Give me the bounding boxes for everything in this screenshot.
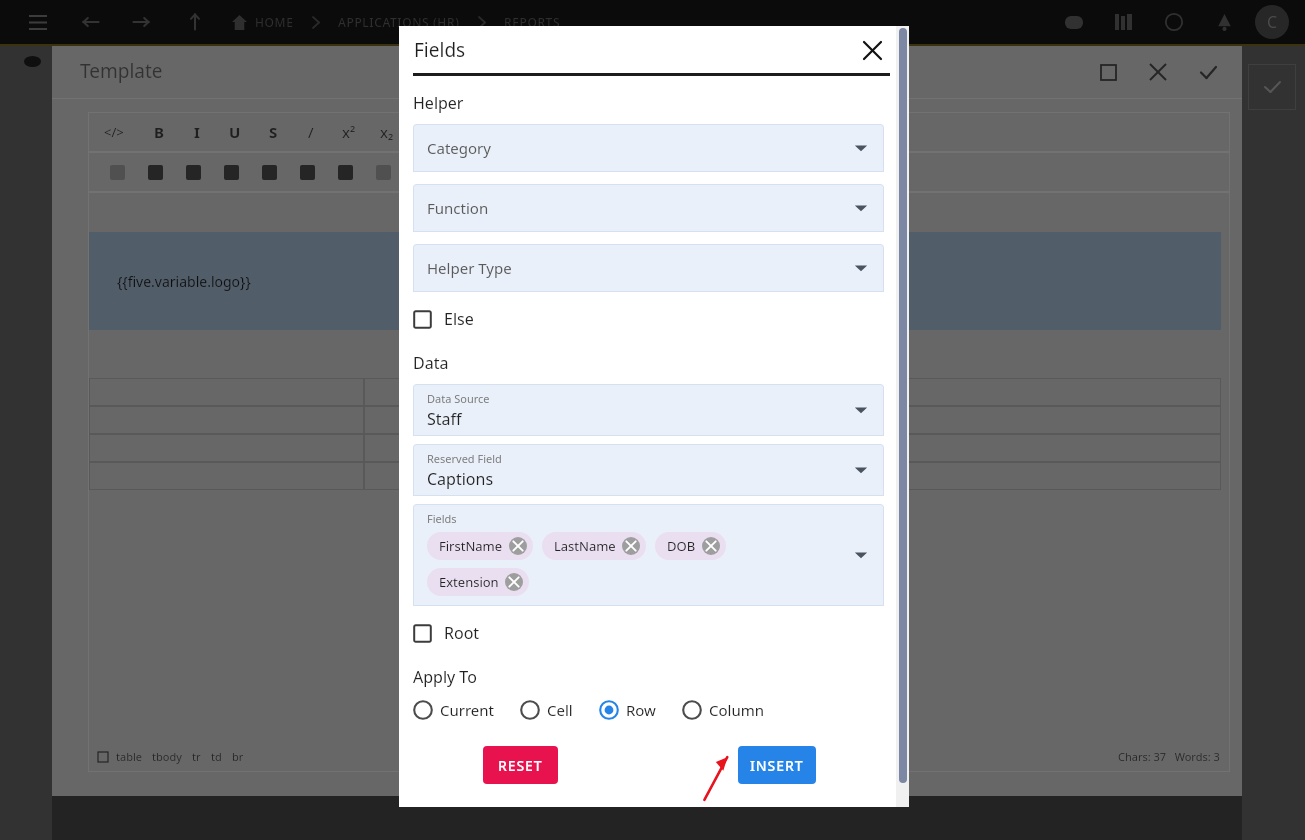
button[interactable]: Confirm — [1196, 60, 1220, 84]
staticText: Template — [80, 58, 163, 84]
button[interactable]: INSERT — [738, 746, 816, 784]
button[interactable]: Remove — [702, 537, 720, 555]
button[interactable]: Fullscreen — [1096, 60, 1120, 84]
staticText: </> — [104, 123, 124, 141]
staticText: DOB — [667, 537, 696, 555]
staticText: Cell — [547, 700, 573, 720]
button[interactable]: Remove — [509, 537, 527, 555]
staticText: tr — [192, 749, 201, 764]
staticText: Row — [626, 700, 656, 720]
button[interactable]: Close — [857, 35, 887, 65]
button[interactable]: Current — [413, 700, 498, 720]
staticText: Current — [440, 700, 494, 720]
staticText: RESET — [498, 756, 543, 775]
staticText: Staff — [427, 408, 462, 430]
staticText: Fields — [427, 511, 457, 526]
staticText: Data Source — [427, 391, 490, 406]
button[interactable]: Forward — [128, 9, 154, 35]
button[interactable]: Reserved Field — [413, 444, 884, 496]
staticText: U — [229, 122, 241, 142]
button[interactable]: FirstName — [427, 532, 533, 560]
button[interactable]: Help — [1161, 9, 1187, 35]
staticText: Data — [413, 352, 449, 374]
staticText: Staff — [603, 263, 667, 300]
staticText: Extension — [439, 573, 499, 591]
button[interactable]: Remove — [505, 573, 523, 591]
button[interactable]: Notifications — [1211, 9, 1237, 35]
staticText: table — [116, 749, 142, 764]
staticText: Chars: 37 Words: 3 — [1118, 749, 1220, 764]
staticText: Captions — [427, 468, 494, 490]
button[interactable]: APPLICATIONS (HR) — [338, 14, 460, 30]
staticText: td — [211, 749, 222, 764]
button[interactable]: Root — [413, 622, 480, 644]
staticText: Category — [427, 138, 491, 158]
staticText: Helper — [413, 92, 464, 114]
button[interactable]: Library — [1111, 9, 1137, 35]
button[interactable]: Fields — [413, 504, 884, 606]
button[interactable]: Extension — [427, 568, 529, 596]
button[interactable]: Row — [599, 700, 660, 720]
button[interactable]: Account — [1255, 5, 1289, 39]
staticText: Helper Type — [427, 258, 512, 278]
staticText: {{five.variable.logo}} — [117, 272, 251, 291]
staticText: Column — [709, 700, 764, 720]
staticText: FirstName — [439, 537, 503, 555]
button[interactable]: Menu — [24, 8, 52, 36]
staticText: Else — [444, 308, 474, 330]
staticText: / — [308, 122, 314, 142]
staticText: x² — [342, 122, 356, 142]
staticText: REPORTS — [504, 14, 561, 30]
button[interactable]: Data Source — [413, 384, 884, 436]
button[interactable]: Category — [413, 124, 884, 172]
staticText: tbody — [152, 749, 182, 764]
button[interactable]: Remove — [622, 537, 640, 555]
button[interactable]: Close — [1146, 60, 1170, 84]
button[interactable]: Else — [413, 308, 474, 330]
staticText: Reserved Field — [427, 451, 502, 466]
staticText: LastName — [554, 537, 616, 555]
staticText: x₂ — [380, 122, 394, 142]
button[interactable]: Column — [682, 700, 768, 720]
button[interactable]: Chat — [1061, 9, 1087, 35]
staticText: S — [269, 122, 278, 142]
button[interactable]: RESET — [483, 746, 558, 784]
button[interactable]: Cell — [520, 700, 577, 720]
button[interactable]: Up — [182, 9, 208, 35]
staticText: Function — [427, 198, 489, 218]
button[interactable]: DOB — [655, 532, 726, 560]
staticText: br — [232, 749, 244, 764]
button[interactable]: Function — [413, 184, 884, 232]
staticText: C — [1267, 11, 1278, 33]
staticText: B — [154, 122, 164, 142]
staticText: Apply To — [413, 666, 477, 688]
button[interactable]: Helper Type — [413, 244, 884, 292]
button[interactable]: Back — [78, 9, 104, 35]
staticText: Fields — [414, 37, 466, 63]
staticText: INSERT — [750, 756, 804, 775]
button[interactable]: LastName — [542, 532, 646, 560]
staticText: Root — [444, 622, 480, 644]
staticText: I — [194, 122, 200, 142]
button[interactable]: HOME — [255, 14, 294, 30]
